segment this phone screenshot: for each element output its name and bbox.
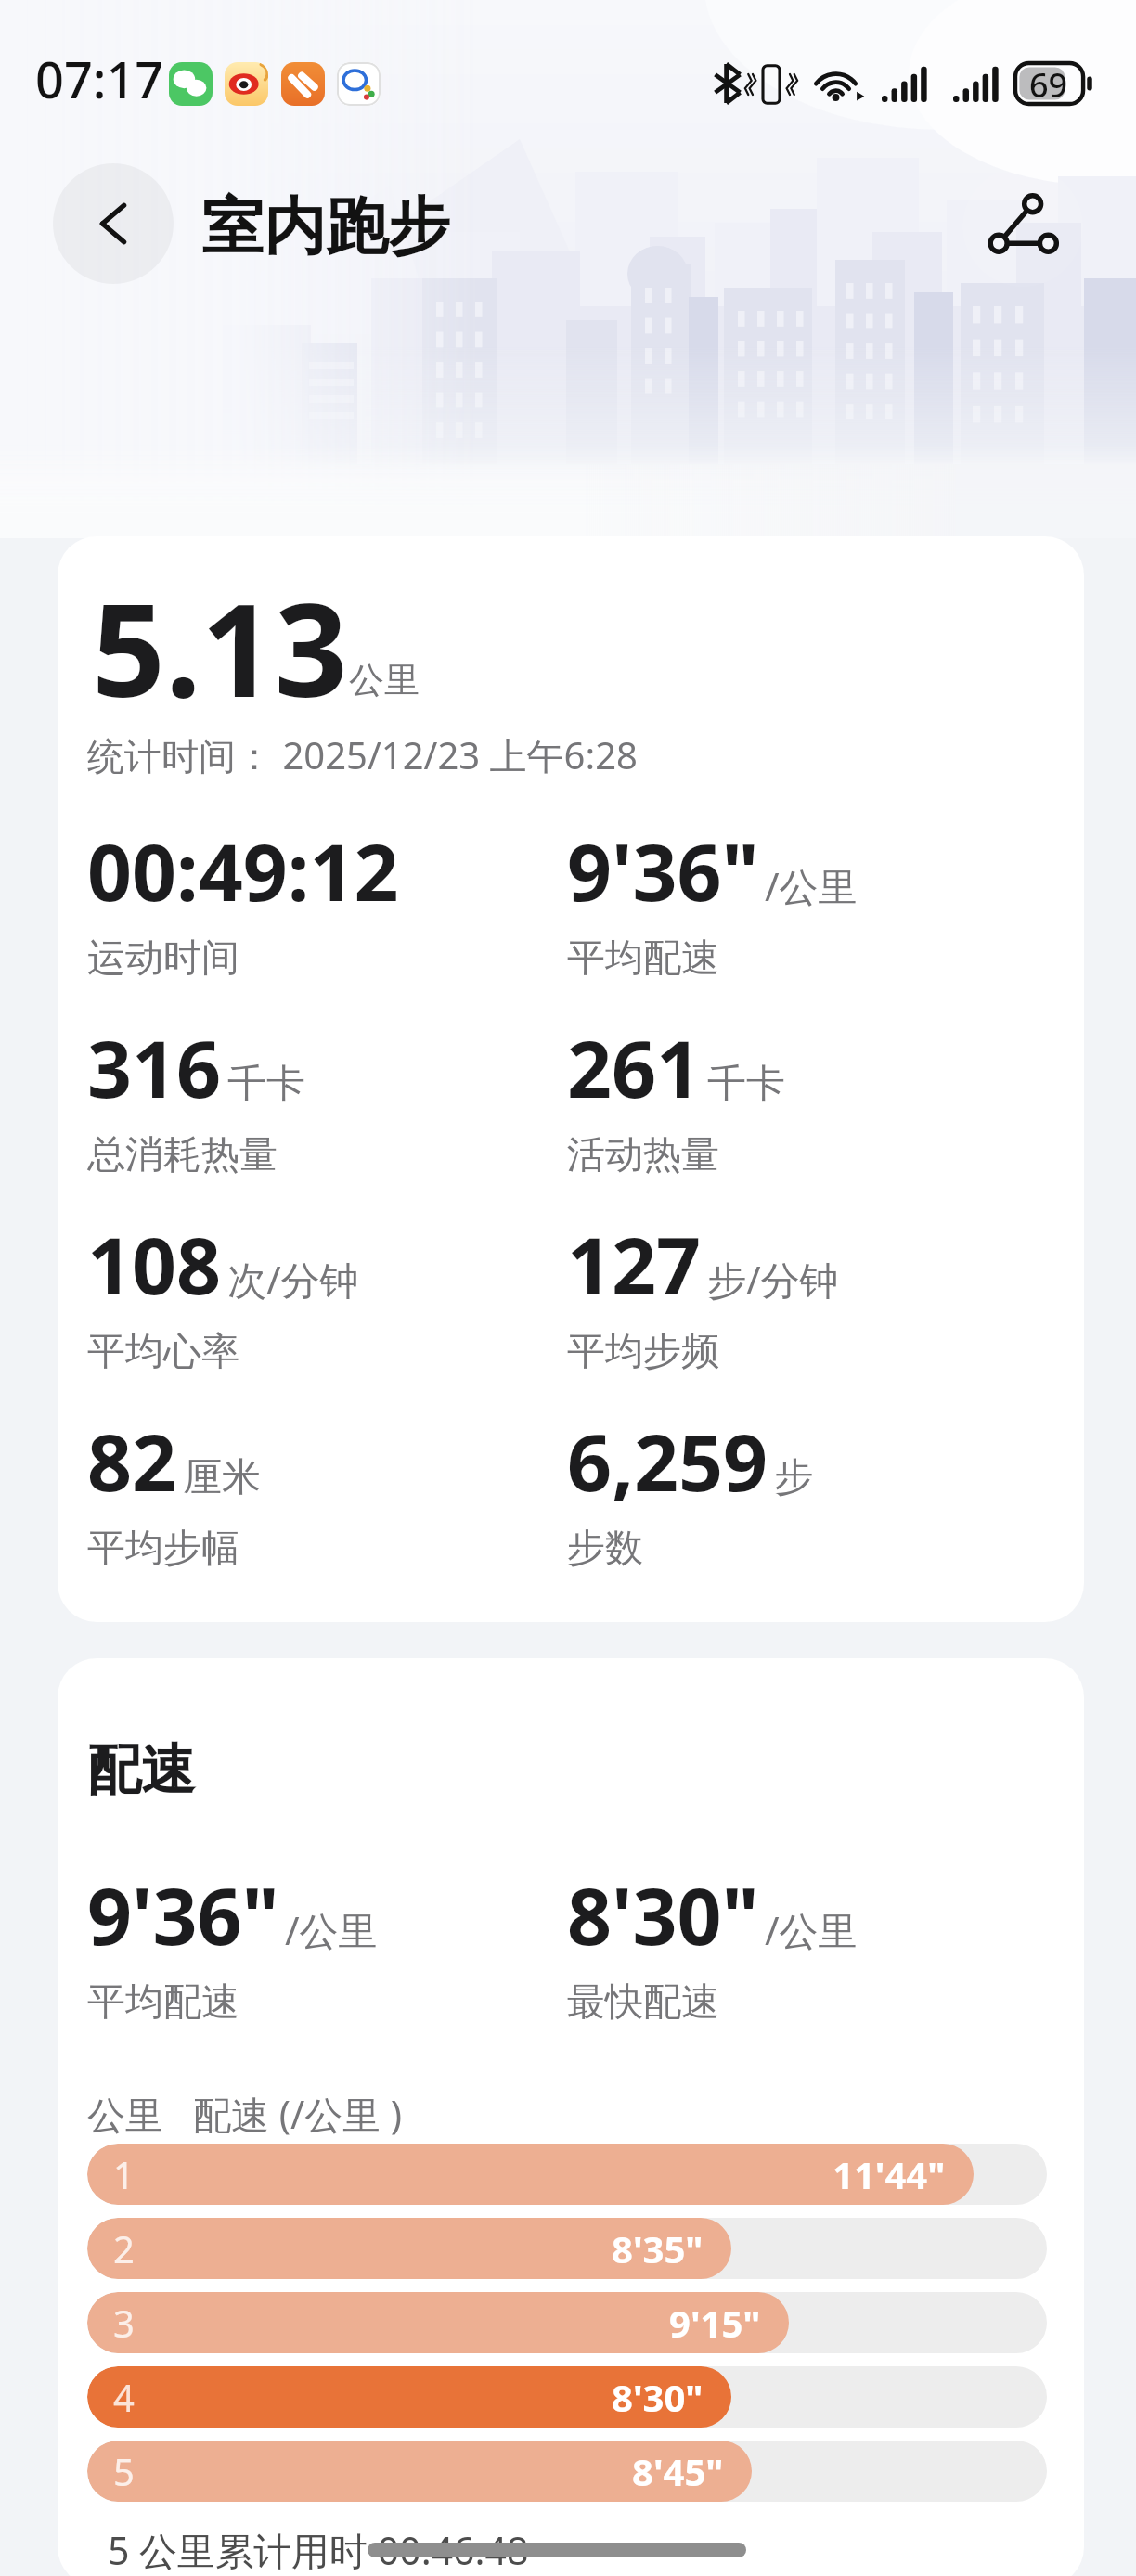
staticText: 8'45" (632, 2446, 724, 2496)
button[interactable]: Back (53, 163, 174, 284)
staticText: 9'36" (567, 818, 759, 923)
staticText: 69 (1029, 62, 1068, 103)
staticText: 平均配速 (567, 934, 719, 983)
staticText: 82 (87, 1408, 177, 1513)
staticText: 5 公里累计用时 00:46:48 (108, 2524, 529, 2576)
staticText: 平均心率 (87, 1328, 239, 1376)
staticText: 公里 配速 (/公里 ) (87, 2088, 403, 2140)
staticText: 127 (567, 1211, 702, 1317)
staticText: 00:49:12 (87, 818, 399, 923)
staticText: 8'35" (612, 2223, 704, 2273)
staticText: 步数 (567, 1525, 643, 1573)
staticText: /公里 (765, 1903, 858, 1956)
staticText: 总消耗热量 (87, 1131, 278, 1179)
staticText: 步/分钟 (707, 1253, 839, 1306)
staticText: 平均步幅 (87, 1525, 239, 1573)
staticText: /公里 (285, 1903, 378, 1956)
staticText: 3 (113, 2298, 135, 2348)
staticText: 统计时间： 2025/12/23 上午6:28 (87, 729, 638, 780)
staticText: 2 (113, 2223, 135, 2273)
staticText: 5.13 (92, 560, 348, 734)
staticText: 108 (87, 1211, 222, 1317)
staticText: 11'44" (833, 2149, 946, 2199)
staticText: 次/分钟 (227, 1253, 359, 1306)
button[interactable]: Share (962, 166, 1083, 287)
staticText: 316 (87, 1014, 222, 1120)
staticText: 最快配速 (567, 1978, 719, 2027)
staticText: 5 (113, 2446, 135, 2496)
staticText: 运动时间 (87, 934, 239, 983)
staticText: 6,259 (567, 1408, 768, 1513)
staticText: 室内跑步 (201, 187, 450, 265)
staticText: 千卡 (707, 1060, 785, 1109)
staticText: 公里 (349, 658, 420, 702)
staticText: 07:17 (35, 45, 164, 113)
staticText: 8'30" (567, 1861, 759, 1967)
staticText: 步 (774, 1453, 813, 1502)
staticText: 配速 (87, 1736, 195, 1804)
staticText: 8'30" (612, 2372, 704, 2422)
staticText: 261 (567, 1014, 702, 1120)
staticText: 平均配速 (87, 1978, 239, 2027)
staticText: 9'15" (669, 2298, 761, 2348)
staticText: 千卡 (227, 1060, 305, 1109)
staticText: 1 (113, 2149, 135, 2199)
staticText: 活动热量 (567, 1131, 719, 1179)
staticText: 厘米 (183, 1453, 261, 1502)
staticText: 平均步频 (567, 1328, 719, 1376)
staticText: 4 (113, 2372, 135, 2422)
staticText: 9'36" (87, 1861, 279, 1967)
staticText: /公里 (765, 859, 858, 912)
